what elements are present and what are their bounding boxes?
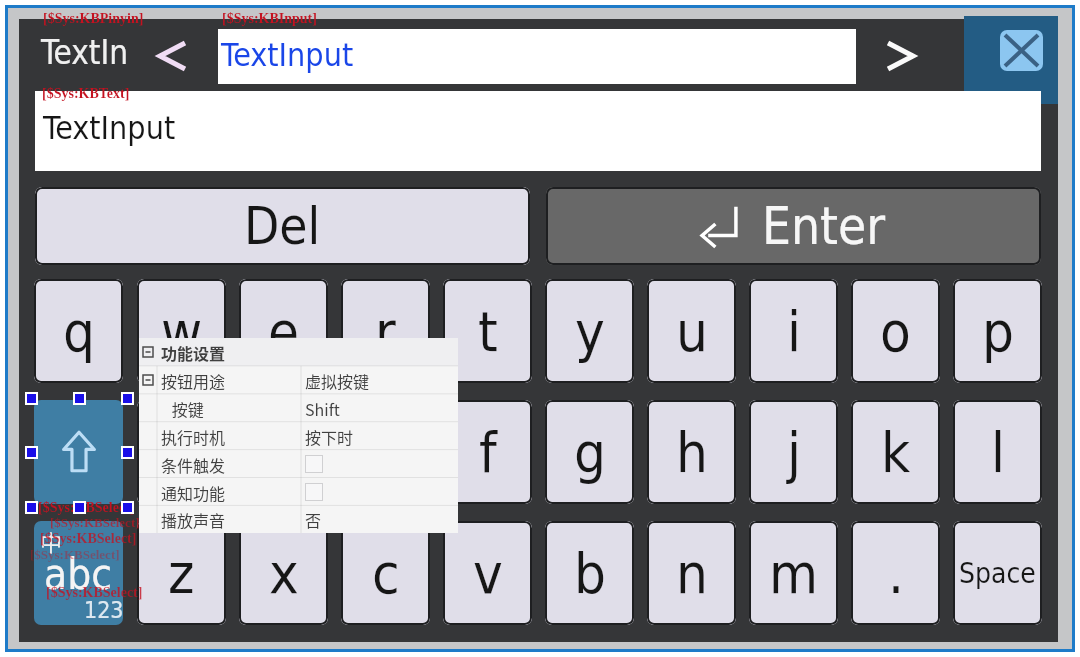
staticText: 播放声音 — [161, 508, 226, 531]
button[interactable]: Del — [35, 187, 530, 265]
staticText: . — [888, 541, 904, 606]
staticText: 虚拟按键 — [305, 369, 370, 392]
staticText: [$Sys:KBSelect] — [46, 585, 143, 601]
staticText: 123 — [84, 597, 123, 624]
button[interactable]: j — [749, 400, 838, 504]
staticText: 条件触发 — [161, 453, 226, 476]
button[interactable]: e — [239, 279, 328, 383]
staticText: e — [268, 299, 300, 364]
button[interactable]: d — [341, 400, 430, 504]
staticText: a — [166, 420, 197, 485]
staticText: k — [881, 420, 911, 485]
staticText: [$Sys:KBText] — [42, 86, 130, 102]
button[interactable]: t — [443, 279, 532, 383]
staticText: Space — [959, 557, 1036, 590]
staticText: [$Sys:KBSelect] — [38, 500, 135, 516]
button[interactable]: 中 — [34, 521, 123, 625]
button[interactable]: c — [341, 521, 430, 625]
staticText: 通知功能 — [161, 481, 226, 504]
staticText: 按下时 — [305, 425, 354, 448]
button[interactable]: Shift — [34, 400, 123, 504]
button[interactable]: o — [851, 279, 940, 383]
button[interactable]: z — [137, 521, 226, 625]
staticText: y — [575, 299, 605, 364]
staticText: m — [769, 541, 819, 606]
button[interactable]: a — [137, 400, 226, 504]
staticText: z — [168, 541, 195, 606]
staticText: 按键 — [161, 397, 204, 420]
staticText: 按钮用途 — [161, 369, 226, 392]
button[interactable]: Close — [964, 16, 1058, 104]
button[interactable]: Space — [953, 521, 1042, 625]
staticText: 中 — [40, 525, 63, 557]
button[interactable]: g — [545, 400, 634, 504]
staticText: o — [880, 299, 911, 364]
staticText: Shift — [305, 397, 340, 420]
button[interactable]: u — [647, 279, 736, 383]
staticText: [$Sys:KBPinyin] — [43, 11, 144, 27]
staticText: Del — [244, 197, 321, 256]
button[interactable]: y — [545, 279, 634, 383]
staticText: i — [787, 299, 801, 364]
staticText: b — [574, 541, 606, 606]
staticText: p — [982, 299, 1014, 364]
staticText: f — [479, 420, 497, 485]
staticText: TextInput — [43, 109, 176, 146]
staticText: s — [270, 420, 297, 485]
button[interactable]: v — [443, 521, 532, 625]
staticText: d — [370, 420, 402, 485]
button[interactable]: . — [851, 521, 940, 625]
button[interactable]: n — [647, 521, 736, 625]
staticText: l — [991, 420, 1005, 485]
staticText: j — [787, 420, 801, 485]
button[interactable]: s — [239, 400, 328, 504]
button[interactable]: m — [749, 521, 838, 625]
staticText: q — [63, 299, 95, 364]
staticText: [$Sys:KBSelect] — [50, 515, 140, 529]
button[interactable]: r — [341, 279, 430, 383]
staticText: 功能设置 — [161, 341, 226, 364]
staticText: h — [676, 420, 708, 485]
staticText: u — [676, 299, 708, 364]
staticText: [$Sys:KBSelect] — [40, 531, 137, 547]
staticText: c — [372, 541, 400, 606]
button[interactable]: p — [953, 279, 1042, 383]
staticText: x — [269, 541, 299, 606]
staticText: n — [676, 541, 708, 606]
staticText: abc — [44, 550, 112, 599]
staticText: r — [375, 299, 396, 364]
button[interactable]: q — [34, 279, 123, 383]
staticText: TextInput — [221, 36, 354, 73]
staticText: v — [473, 541, 503, 606]
button[interactable]: x — [239, 521, 328, 625]
staticText: [$Sys:KBInput] — [222, 11, 317, 27]
button[interactable]: Enter — [546, 187, 1041, 265]
staticText: t — [478, 299, 498, 364]
staticText: TextIn — [41, 33, 128, 71]
staticText: w — [161, 299, 203, 364]
staticText: 否 — [305, 508, 322, 531]
button[interactable]: h — [647, 400, 736, 504]
button[interactable]: i — [749, 279, 838, 383]
staticText: Enter — [762, 197, 886, 256]
staticText: [$Sys:KBSelect] — [30, 547, 120, 561]
staticText: g — [574, 420, 606, 485]
button[interactable]: w — [137, 279, 226, 383]
button[interactable]: l — [953, 400, 1042, 504]
button[interactable]: f — [443, 400, 532, 504]
staticText: 执行时机 — [161, 425, 226, 448]
button[interactable]: k — [851, 400, 940, 504]
button[interactable]: b — [545, 521, 634, 625]
